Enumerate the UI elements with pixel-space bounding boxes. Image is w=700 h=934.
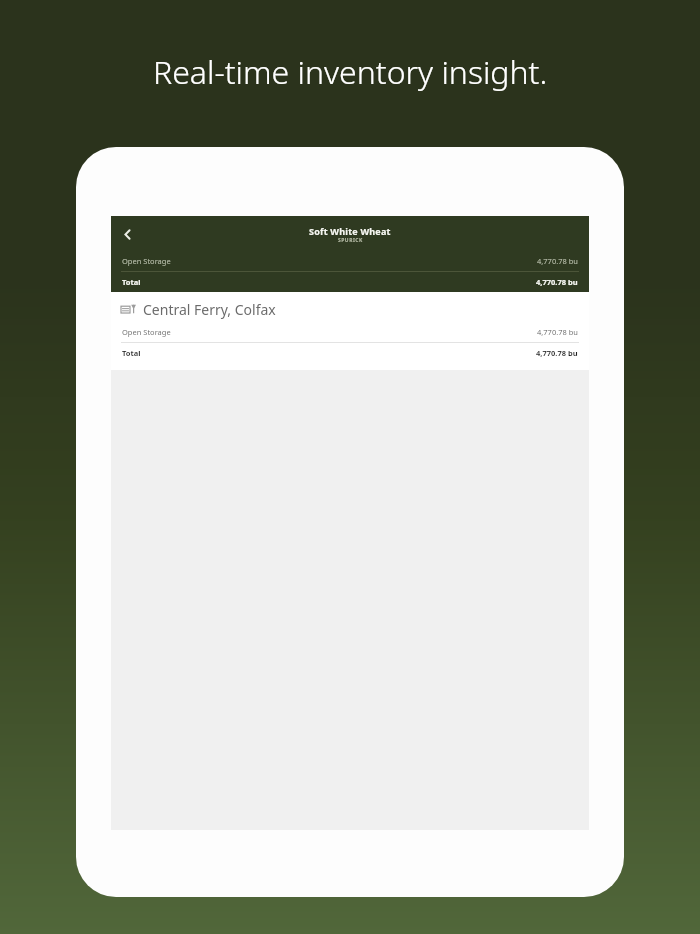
staticText: Soft White Wheat <box>309 225 391 237</box>
staticText: Total <box>122 277 141 287</box>
button[interactable]: Central Ferry, Colfax <box>111 292 589 370</box>
staticText: Central Ferry, Colfax <box>143 300 276 319</box>
staticText: SPURICK <box>338 237 363 244</box>
staticText: Open Storage <box>122 256 171 266</box>
staticText: Total <box>122 348 141 358</box>
staticText: 4,770.78 bu <box>537 327 578 337</box>
staticText: Real-time inventory insight. <box>153 50 548 94</box>
staticText: 4,770.78 bu <box>536 277 578 287</box>
staticText: 4,770.78 bu <box>537 256 578 266</box>
staticText: Open Storage <box>122 327 171 337</box>
button[interactable]: Back <box>114 221 140 247</box>
staticText: 4,770.78 bu <box>536 348 578 358</box>
